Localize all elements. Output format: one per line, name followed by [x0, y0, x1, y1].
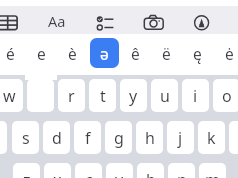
button[interactable]: ê [121, 38, 150, 68]
staticText: i [193, 85, 198, 107]
staticText: k [207, 127, 216, 149]
staticText: r [68, 85, 75, 107]
staticText: v [115, 169, 124, 178]
staticText: s [22, 127, 30, 149]
button[interactable]: Checklist [90, 9, 118, 33]
button[interactable] [27, 79, 54, 112]
staticText: o [222, 85, 232, 107]
staticText: y [129, 85, 138, 107]
staticText: ê [131, 43, 140, 64]
button[interactable]: e [27, 38, 56, 68]
staticText: n [177, 169, 187, 178]
button[interactable]: r [58, 79, 85, 112]
staticText: Aa [48, 11, 66, 31]
button[interactable]: g [105, 121, 132, 154]
button[interactable]: u [151, 79, 178, 112]
button[interactable]: ë [152, 38, 181, 68]
button[interactable]: ə [90, 38, 119, 68]
button[interactable]: t [89, 79, 116, 112]
staticText: t [100, 85, 106, 107]
staticText: d [52, 127, 62, 149]
button[interactable]: v [106, 163, 133, 178]
staticText: f [85, 127, 91, 149]
button[interactable]: x [44, 163, 71, 178]
button[interactable]: Table [0, 8, 22, 38]
staticText: h [145, 127, 155, 149]
button[interactable]: s [12, 121, 39, 154]
staticText: w [3, 85, 16, 107]
staticText: ə [100, 43, 109, 64]
staticText: j [178, 127, 183, 149]
button[interactable]: ę [183, 38, 212, 68]
button[interactable]: a [0, 121, 7, 154]
staticText: é [6, 43, 15, 64]
button[interactable]: h [136, 121, 163, 154]
button[interactable]: è [58, 38, 87, 68]
button[interactable]: é [0, 38, 25, 68]
staticText: ę [193, 43, 202, 64]
staticText: b [146, 169, 156, 178]
staticText: è [68, 43, 77, 64]
button[interactable]: ė [215, 38, 238, 68]
staticText: g [114, 127, 124, 149]
staticText: m [205, 169, 220, 178]
button[interactable]: n [168, 163, 195, 178]
button[interactable]: o [213, 79, 238, 112]
button[interactable]: c [75, 163, 102, 178]
staticText: u [160, 85, 170, 107]
button[interactable]: m [199, 163, 226, 178]
button[interactable]: b [137, 163, 164, 178]
button[interactable]: w [0, 79, 23, 112]
button[interactable]: Camera [142, 10, 166, 34]
staticText: x [53, 169, 62, 178]
button[interactable]: y [120, 79, 147, 112]
button[interactable]: Voice typing [189, 10, 214, 35]
button[interactable]: z [13, 163, 40, 178]
button[interactable]: k [198, 121, 225, 154]
staticText: z [23, 169, 31, 178]
button[interactable]: l [229, 121, 238, 154]
staticText: c [85, 169, 93, 178]
staticText: ė [225, 43, 234, 64]
button[interactable]: i [182, 79, 209, 112]
button[interactable]: d [43, 121, 70, 154]
staticText: ë [162, 43, 171, 64]
button[interactable]: Aa [42, 9, 72, 32]
staticText: e [37, 43, 46, 64]
button[interactable]: f [74, 121, 101, 154]
button[interactable]: j [167, 121, 194, 154]
